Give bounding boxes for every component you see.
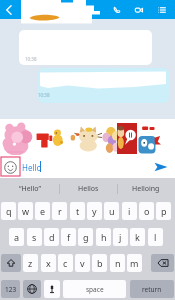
button[interactable]: q xyxy=(1,202,16,220)
button[interactable]: w xyxy=(18,202,33,220)
staticText: y xyxy=(92,205,97,217)
button[interactable]: u xyxy=(104,202,119,220)
button[interactable]: return xyxy=(130,280,174,298)
button[interactable]: e xyxy=(35,202,50,220)
staticText: u xyxy=(109,205,115,217)
button[interactable]: y xyxy=(87,202,102,220)
staticText: Helloing xyxy=(132,184,160,194)
staticText: i xyxy=(128,205,131,217)
staticText: z xyxy=(28,257,33,269)
button[interactable]: Sticker hi card xyxy=(117,123,137,154)
staticText: f xyxy=(67,231,71,243)
staticText: n xyxy=(115,257,121,269)
button[interactable]: Change language xyxy=(23,280,41,298)
button[interactable]: n xyxy=(110,254,125,272)
staticText: x xyxy=(46,257,51,269)
staticText: d xyxy=(49,231,55,243)
staticText: return xyxy=(142,285,162,294)
staticText: h xyxy=(101,231,107,243)
button[interactable]: d xyxy=(44,228,59,246)
button[interactable]: o xyxy=(139,202,154,220)
button[interactable]: j xyxy=(113,228,128,246)
button[interactable]: Sticker blue xyxy=(138,126,161,154)
staticText: c xyxy=(63,257,68,269)
button[interactable]: Back xyxy=(1,2,17,18)
staticText: q xyxy=(6,205,12,217)
staticText: space xyxy=(86,285,104,294)
staticText: t xyxy=(76,205,80,217)
button[interactable]: Voice input xyxy=(44,280,60,298)
button[interactable]: x xyxy=(41,254,56,272)
button[interactable]: a xyxy=(9,228,24,246)
button[interactable]: m xyxy=(127,254,142,272)
button[interactable]: s xyxy=(27,228,42,246)
button[interactable]: Video call xyxy=(131,2,147,18)
staticText: p xyxy=(161,205,167,217)
staticText: e xyxy=(40,205,46,217)
staticText: m xyxy=(130,257,139,269)
button[interactable]: f xyxy=(61,228,76,246)
button[interactable]: r xyxy=(52,202,67,220)
staticText: 10:38 xyxy=(25,56,37,62)
staticText: j xyxy=(119,231,122,243)
staticText: r xyxy=(58,205,62,217)
button[interactable]: p xyxy=(156,202,171,220)
button[interactable]: Backspace xyxy=(151,254,174,272)
button[interactable]: 10:38 xyxy=(38,68,169,103)
button[interactable]: h xyxy=(96,228,111,246)
staticText: Hellos xyxy=(78,184,99,194)
button[interactable]: Menu xyxy=(154,2,170,18)
button[interactable]: c xyxy=(58,254,73,272)
staticText: o xyxy=(144,205,150,217)
staticText: 10:38 xyxy=(38,92,50,98)
button[interactable]: space xyxy=(63,280,126,298)
button[interactable]: g xyxy=(78,228,93,246)
staticText: w xyxy=(22,205,30,217)
button[interactable]: t xyxy=(70,202,85,220)
button[interactable]: l xyxy=(148,228,163,246)
button[interactable]: Emoji xyxy=(4,161,17,174)
button[interactable]: v xyxy=(75,254,90,272)
staticText: Hello xyxy=(22,162,42,173)
button[interactable]: Sticker cat xyxy=(70,126,102,152)
button[interactable]: Hellos xyxy=(59,178,117,199)
button[interactable]: Voice call xyxy=(109,2,125,18)
button[interactable]: Sticker bear xyxy=(2,123,33,156)
staticText: k xyxy=(135,231,140,243)
staticText: 123 xyxy=(5,285,17,294)
staticText: s xyxy=(32,231,37,243)
button[interactable]: 123 xyxy=(1,280,20,298)
button[interactable]: Sticker hello xyxy=(36,128,65,153)
staticText: l xyxy=(154,231,157,243)
button[interactable]: Send xyxy=(152,158,170,176)
button[interactable]: i xyxy=(122,202,137,220)
staticText: a xyxy=(14,231,20,243)
staticText: b xyxy=(97,257,103,269)
staticText: g xyxy=(83,231,89,243)
button[interactable]: “Hello” xyxy=(0,178,59,199)
button[interactable]: b xyxy=(92,254,107,272)
button[interactable]: k xyxy=(130,228,145,246)
staticText: v xyxy=(80,257,85,269)
staticText: “Hello” xyxy=(19,184,41,194)
button[interactable]: z xyxy=(23,254,38,272)
button[interactable]: Sticker crowd xyxy=(102,126,121,154)
button[interactable]: 10:38 xyxy=(19,30,152,65)
button[interactable]: Shift xyxy=(1,254,21,272)
button[interactable]: Helloing xyxy=(117,178,175,199)
